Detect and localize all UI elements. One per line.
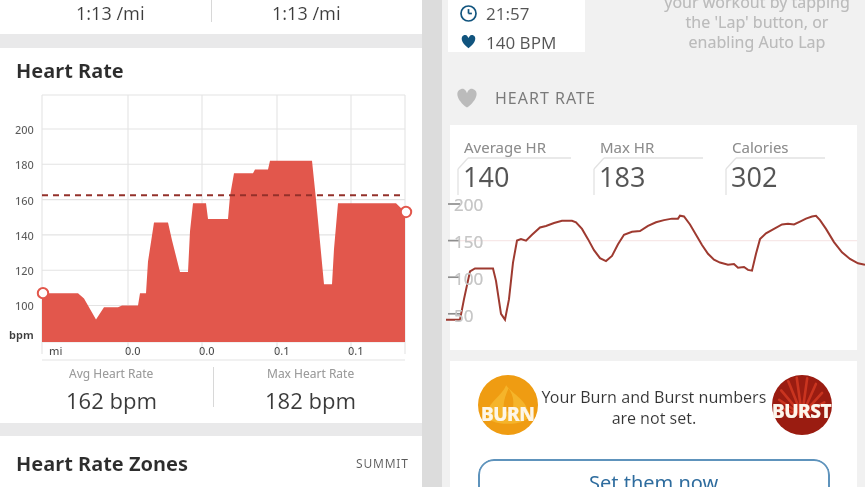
button[interactable]: Burn bbox=[478, 375, 538, 435]
staticText: 162 bpm bbox=[66, 385, 158, 415]
staticText: 0.0 bbox=[125, 343, 141, 358]
staticText: Heart Rate Zones bbox=[16, 450, 189, 477]
staticText: 200 bbox=[15, 122, 34, 137]
staticText: 1:13 /mi bbox=[272, 1, 341, 26]
staticText: 180 bbox=[15, 157, 34, 172]
staticText: 50 bbox=[454, 304, 474, 327]
staticText: 21:57 bbox=[486, 2, 530, 25]
staticText: mi bbox=[49, 343, 63, 358]
staticText: 150 bbox=[454, 230, 484, 253]
staticText: Average HR bbox=[464, 137, 547, 157]
button[interactable]: SUMMIT bbox=[348, 447, 417, 479]
staticText: 1:13 /mi bbox=[76, 1, 145, 26]
staticText: 0.1 bbox=[348, 343, 364, 358]
staticText: Your Burn and Burst numbers are not set. bbox=[530, 386, 778, 429]
staticText: 183 bbox=[599, 158, 646, 195]
staticText: 200 bbox=[454, 193, 484, 216]
staticText: 120 bbox=[15, 263, 34, 278]
staticText: Max Heart Rate bbox=[267, 365, 355, 381]
button[interactable]: Set them now bbox=[478, 459, 830, 487]
staticText: Avg Heart Rate bbox=[69, 365, 154, 381]
staticText: 140 bbox=[463, 158, 510, 195]
staticText: Calories bbox=[732, 137, 789, 157]
staticText: HEART RATE bbox=[495, 87, 596, 109]
staticText: BURST bbox=[772, 398, 832, 424]
staticText: 140 BPM bbox=[486, 31, 557, 52]
staticText: 100 bbox=[454, 267, 484, 290]
staticText: Max HR bbox=[600, 137, 655, 157]
staticText: 160 bbox=[15, 193, 34, 208]
staticText: bpm bbox=[9, 327, 34, 342]
staticText: 140 bbox=[15, 228, 34, 243]
staticText: 302 bbox=[731, 158, 778, 195]
button[interactable]: HEART RATE bbox=[455, 85, 596, 111]
staticText: SUMMIT bbox=[356, 455, 409, 471]
staticText: 0.1 bbox=[274, 343, 290, 358]
staticText: Set them now bbox=[589, 469, 719, 487]
staticText: your workout by tapping the 'Lap' button… bbox=[642, 0, 865, 52]
button[interactable]: Burst bbox=[772, 375, 832, 435]
staticText: BURN bbox=[481, 401, 535, 427]
staticText: 182 bpm bbox=[265, 385, 357, 415]
staticText: 100 bbox=[15, 298, 34, 313]
staticText: Heart Rate bbox=[16, 57, 124, 84]
staticText: 0.0 bbox=[199, 343, 215, 358]
